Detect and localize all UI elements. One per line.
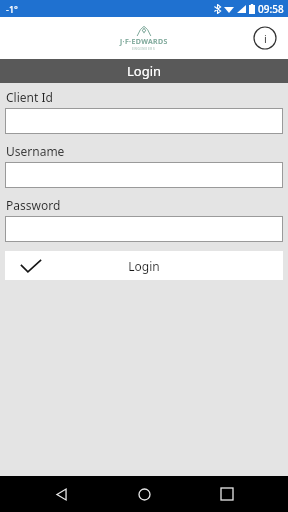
button[interactable]	[5, 162, 283, 188]
staticText: -1°	[6, 3, 18, 15]
button[interactable]: Recent apps	[205, 476, 249, 512]
staticText: ENGINEERS	[132, 47, 156, 51]
button[interactable]: Back	[39, 476, 83, 512]
button[interactable]: Login	[5, 251, 283, 280]
staticText: Username	[6, 143, 65, 159]
staticText: J·F·EDWARDS	[120, 37, 168, 47]
button[interactable]: Information	[252, 25, 278, 51]
staticText: i	[264, 31, 267, 46]
button[interactable]	[5, 216, 283, 242]
staticText: Login	[127, 62, 162, 80]
button[interactable]	[5, 108, 283, 134]
button[interactable]: Home	[122, 476, 166, 512]
staticText: 09:58	[258, 2, 284, 16]
staticText: Client Id	[6, 89, 53, 105]
staticText: Password	[6, 197, 61, 213]
staticText: Login	[57, 258, 231, 274]
